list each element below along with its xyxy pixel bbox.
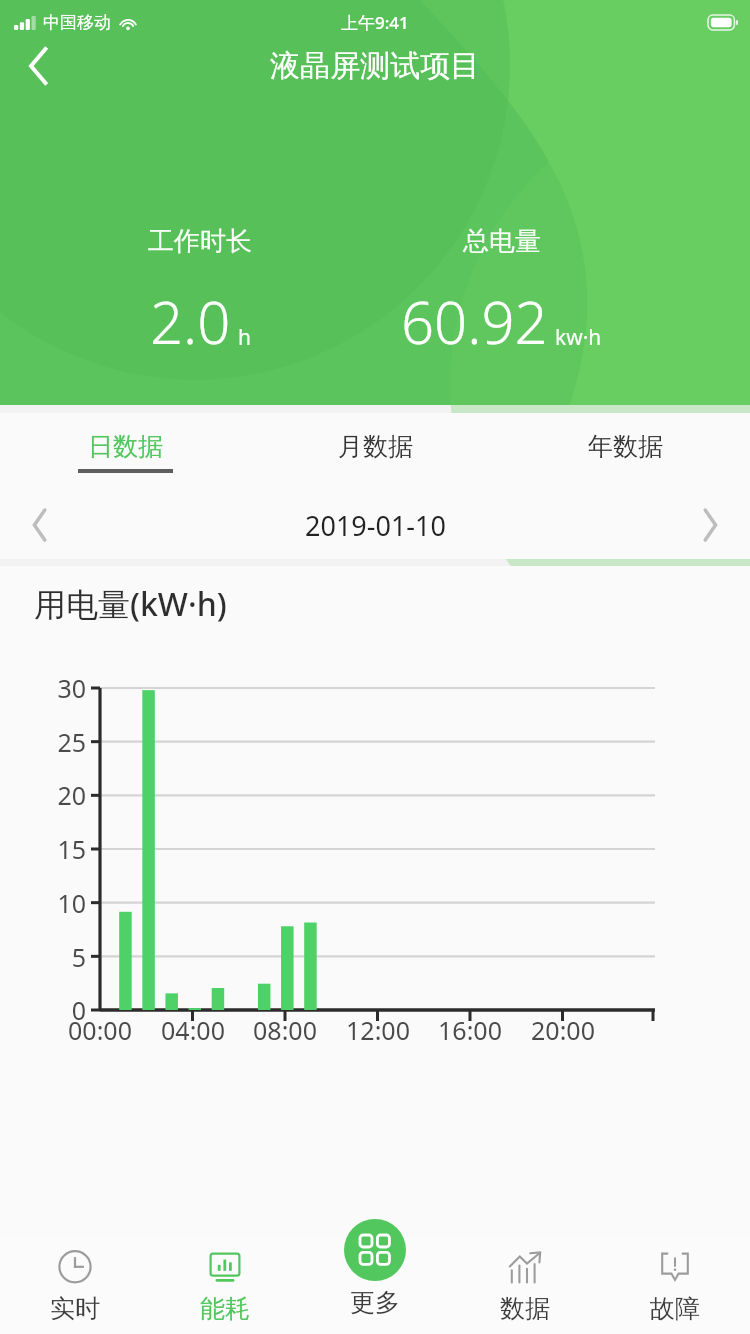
button[interactable]: Back [10,44,68,88]
staticText: h [238,323,251,352]
staticText: 更多 [350,1287,400,1318]
button[interactable]: Next day [678,493,742,557]
button[interactable]: 年数据 [500,413,750,491]
staticText: 年数据 [588,431,663,462]
staticText: 工作时长 [148,225,252,258]
button[interactable]: 月数据 [250,413,500,491]
button[interactable]: 日数据 [0,413,250,491]
button[interactable]: Previous day [8,493,72,557]
staticText: 10 [34,886,86,920]
staticText: 总电量 [463,225,541,258]
staticText: 故障 [650,1293,700,1324]
staticText: 5 [34,940,86,974]
staticText: 2019-01-10 [305,507,446,544]
staticText: 25 [34,725,86,759]
staticText: 00:00 [54,1013,146,1047]
staticText: 中国移动 [43,12,111,33]
staticText: 20:00 [517,1013,609,1047]
staticText: 2.0 [150,282,231,361]
other: More [344,1219,406,1281]
button[interactable]: 数据 [450,1238,600,1334]
staticText: 月数据 [338,431,413,462]
staticText: 用电量(kW·h) [34,582,227,626]
button[interactable]: More [300,1219,450,1334]
button[interactable]: 能耗 [150,1238,300,1334]
staticText: 实时 [50,1293,100,1324]
staticText: 08:00 [239,1013,331,1047]
staticText: 30 [34,671,86,705]
button[interactable]: 实时 [0,1238,150,1334]
staticText: 液晶屏测试项目 [270,47,480,85]
staticText: 日数据 [88,431,163,462]
staticText: 04:00 [147,1013,239,1047]
staticText: kw·h [555,323,602,352]
staticText: 60.92 [401,282,548,361]
staticText: 能耗 [200,1293,250,1324]
staticText: 20 [34,778,86,812]
staticText: 数据 [500,1293,550,1324]
staticText: 上午9:41 [341,11,409,34]
button[interactable]: 故障 [600,1238,750,1334]
staticText: 15 [34,832,86,866]
staticText: 16:00 [424,1013,516,1047]
staticText: 12:00 [332,1013,424,1047]
staticText: 0 [34,993,86,1027]
